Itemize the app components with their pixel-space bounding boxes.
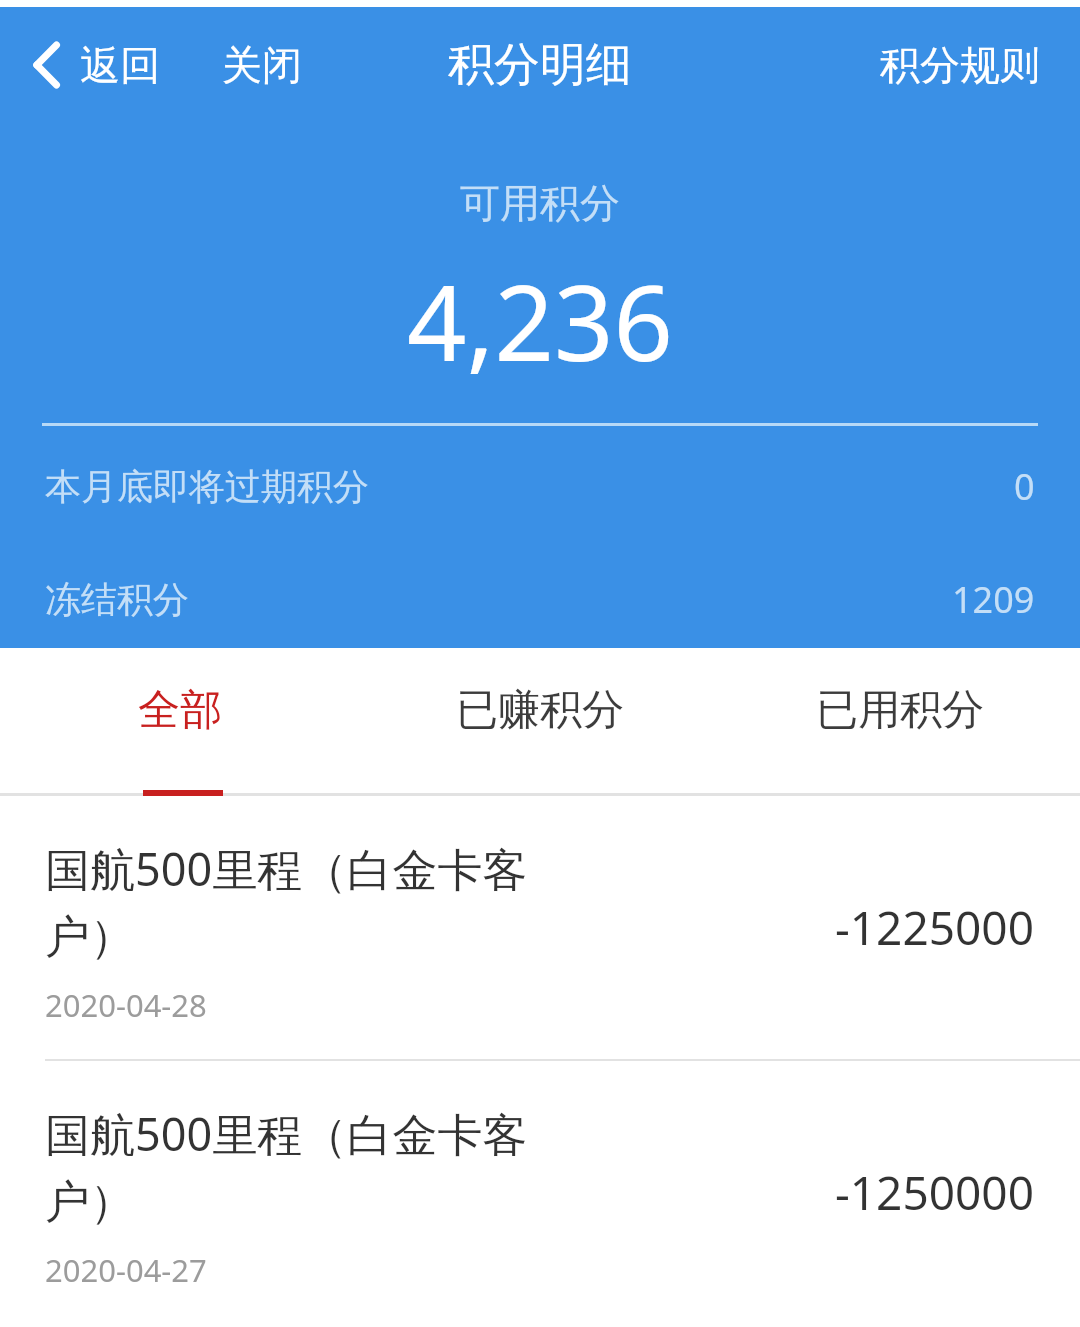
staticText: 积分明细 bbox=[448, 36, 632, 94]
staticText: 可用积分 bbox=[460, 178, 620, 228]
staticText: 0 bbox=[1014, 462, 1035, 511]
staticText: -1250000 bbox=[835, 1161, 1034, 1224]
button[interactable]: 关闭 bbox=[212, 28, 312, 102]
staticText: 2020-04-27 bbox=[45, 1249, 207, 1291]
button[interactable]: 国航500里程（白金卡客户） bbox=[0, 1059, 1080, 1324]
button[interactable]: 已用积分 bbox=[720, 648, 1080, 796]
staticText: 冻结积分 bbox=[45, 577, 189, 622]
staticText: 2020-04-28 bbox=[45, 984, 207, 1026]
staticText: 4,236 bbox=[407, 250, 673, 392]
staticText: 全部 bbox=[138, 684, 222, 737]
button[interactable]: 已赚积分 bbox=[360, 648, 720, 796]
staticText: 1209 bbox=[952, 575, 1035, 624]
other: 返回 bbox=[30, 40, 64, 90]
button[interactable]: 国航500里程（白金卡客户） bbox=[0, 796, 1080, 1059]
staticText: 国航500里程（白金卡客户） bbox=[45, 838, 565, 966]
button[interactable]: 全部 bbox=[0, 648, 360, 796]
staticText: 关闭 bbox=[222, 40, 302, 90]
staticText: 积分规则 bbox=[880, 40, 1040, 90]
staticText: 已赚积分 bbox=[456, 684, 624, 737]
staticText: 本月底即将过期积分 bbox=[45, 464, 369, 509]
staticText: 返回 bbox=[80, 40, 160, 90]
staticText: 已用积分 bbox=[816, 684, 984, 737]
staticText: -1225000 bbox=[835, 896, 1034, 959]
button[interactable]: 积分规则 bbox=[870, 28, 1050, 102]
staticText: 国航500里程（白金卡客户） bbox=[45, 1103, 565, 1231]
button[interactable]: 返回 bbox=[22, 30, 168, 100]
